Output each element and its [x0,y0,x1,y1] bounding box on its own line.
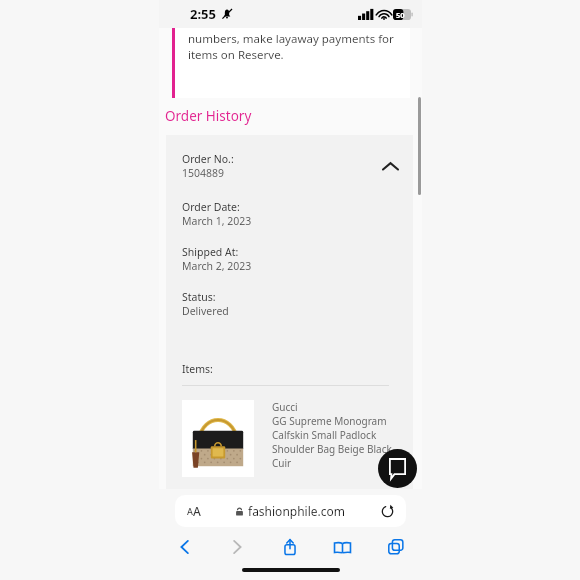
button[interactable]: A [175,495,406,527]
staticText: 1504889 [182,166,225,180]
staticText: Order History [165,107,252,125]
button[interactable]: Collapse [379,155,401,177]
staticText: GG Supreme Monogram [272,414,387,428]
staticText: 2:55 [190,5,216,23]
staticText: Shipped At: [182,245,239,259]
staticText: Cuir [272,456,292,470]
button[interactable]: Order No.: [182,152,401,180]
staticText: items on Reserve. [188,47,284,63]
staticText: Gucci [272,400,298,414]
button[interactable]: Chat [378,449,417,488]
staticText: March 2, 2023 [182,259,252,273]
staticText: March 1, 2023 [182,214,252,228]
staticText: numbers, make layaway payments for [188,31,394,47]
staticText: Order No.: [182,152,234,166]
staticText: Shoulder Bag Beige Black [272,442,392,456]
staticText: 50 [396,10,405,20]
staticText: A [193,503,201,519]
staticText: Order Date: [182,200,240,214]
staticText: Calfskin Small Padlock [272,428,377,442]
button[interactable]: Tabs [369,534,422,560]
staticText: Status: [182,290,216,304]
button[interactable]: Share [263,534,316,560]
button[interactable]: Reload [379,503,395,519]
staticText: Items: [182,362,213,376]
button[interactable]: Forward [211,534,263,560]
button[interactable]: Gucci [182,400,401,477]
staticText: fashionphile.com [248,503,346,519]
staticText: A [187,505,193,517]
staticText: Delivered [182,304,229,318]
button[interactable]: Back [159,534,211,560]
button[interactable]: Bookmarks [316,534,369,560]
